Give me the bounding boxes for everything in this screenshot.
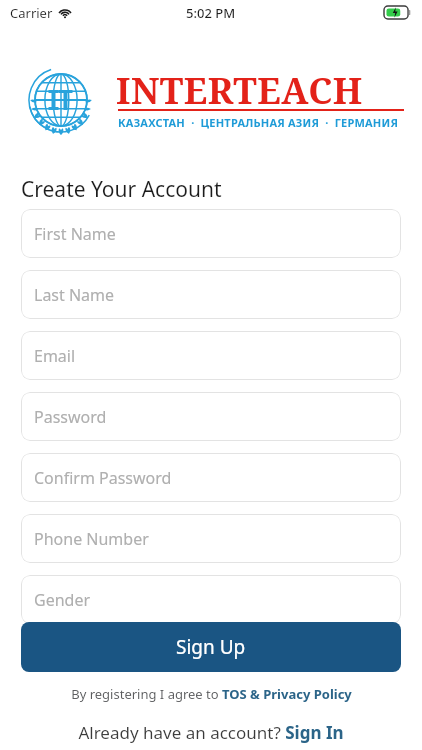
staticText: INTERTEACH xyxy=(116,66,363,115)
staticText: 5:02 PM xyxy=(186,4,236,22)
staticText: Last Name xyxy=(34,284,115,306)
staticText: First Name xyxy=(34,223,116,245)
staticText: Create Your Account xyxy=(21,175,222,204)
staticText: By registering I agree to TOS & Privacy … xyxy=(71,685,352,703)
other: Wi-Fi xyxy=(58,6,72,20)
other: Battery charging xyxy=(384,6,412,19)
button[interactable]: Confirm Password xyxy=(21,453,401,502)
button[interactable]: By registering I agree to TOS & Privacy … xyxy=(0,682,422,706)
staticText: Email xyxy=(34,345,76,367)
button[interactable]: Last Name xyxy=(21,270,401,319)
staticText: КАЗАХСТАН · ЦЕНТРАЛЬНАЯ АЗИЯ · ГЕРМАНИЯ xyxy=(118,115,399,130)
staticText: Already have an account? Sign In xyxy=(78,721,344,744)
button[interactable]: Gender xyxy=(21,575,401,624)
staticText: Sign Up xyxy=(176,634,246,660)
staticText: Phone Number xyxy=(34,528,149,550)
button[interactable]: Email xyxy=(21,331,401,380)
button[interactable]: Sign Up xyxy=(21,622,401,672)
staticText: Gender xyxy=(34,589,91,611)
button[interactable]: Already have an account? Sign In xyxy=(0,717,422,747)
button[interactable]: First Name xyxy=(21,209,401,258)
button[interactable]: Phone Number xyxy=(21,514,401,563)
staticText: Carrier xyxy=(10,4,53,22)
staticText: Confirm Password xyxy=(34,467,172,489)
staticText: Password xyxy=(34,406,107,428)
button[interactable]: Password xyxy=(21,392,401,441)
